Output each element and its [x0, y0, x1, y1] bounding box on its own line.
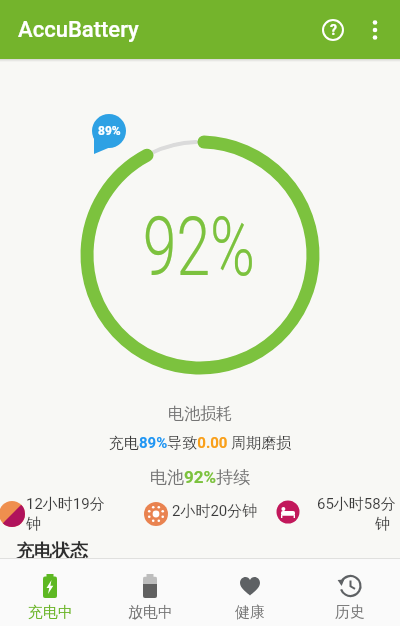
button[interactable]: ? — [311, 8, 355, 52]
staticText: 钟 — [375, 515, 390, 534]
staticText: 12小时19分 — [26, 495, 105, 514]
staticText: 钟 — [26, 515, 41, 534]
staticText: 健康 — [235, 603, 265, 622]
button[interactable] — [355, 10, 395, 50]
staticText: 2小时20分钟 — [172, 502, 258, 521]
staticText: 92% — [143, 199, 255, 295]
staticText: 充电中 — [28, 603, 73, 622]
button[interactable]: 健康 — [200, 559, 300, 626]
staticText: 电池92%持续 — [150, 467, 251, 488]
staticText: 65小时58分 — [317, 495, 396, 514]
staticText: 充电89%导致0.00 周期磨损 — [109, 434, 292, 453]
button[interactable]: 历史 — [300, 559, 400, 626]
button[interactable]: 充电中 — [0, 559, 100, 626]
staticText: ? — [330, 22, 337, 38]
button[interactable]: 放电中 — [100, 559, 200, 626]
staticText: 电池损耗 — [168, 404, 232, 424]
staticText: 充电状态 — [16, 540, 88, 563]
staticText: AccuBattery — [18, 17, 139, 43]
staticText: 89% — [98, 124, 121, 138]
staticText: 历史 — [335, 603, 365, 622]
staticText: 放电中 — [128, 603, 173, 622]
